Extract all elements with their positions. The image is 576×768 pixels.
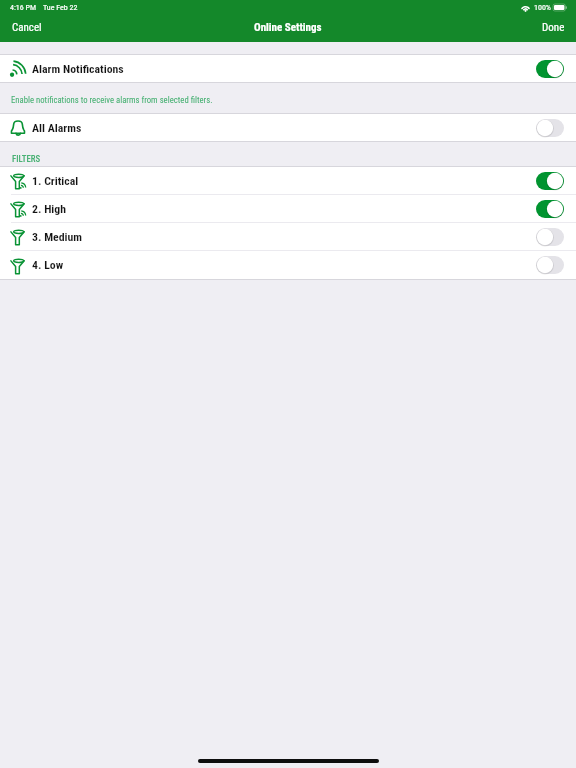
button[interactable]: On [536, 172, 564, 190]
button[interactable]: Off [536, 119, 564, 137]
staticText: Tue Feb 22 [43, 3, 78, 12]
staticText: Done [542, 21, 565, 34]
staticText: 3. Medium [32, 230, 83, 244]
button[interactable]: On [536, 60, 564, 78]
staticText: 2. High [32, 202, 67, 216]
other: Filter [10, 200, 27, 217]
staticText: Alarm Notifications [32, 62, 124, 76]
button[interactable]: Done [530, 0, 576, 41]
button[interactable]: Off [536, 256, 564, 274]
other: All alarms [10, 119, 27, 136]
staticText: 1. Critical [32, 174, 79, 188]
other: Filter [10, 257, 27, 274]
staticText: Online Settings [254, 21, 322, 34]
staticText: All Alarms [32, 121, 82, 135]
staticText: 4:16 PM [10, 3, 37, 12]
staticText: Enable notifications to receive alarms f… [11, 95, 213, 105]
button[interactable]: On [536, 200, 564, 218]
button[interactable]: All alarms [0, 114, 576, 141]
button[interactable]: Filter [0, 167, 576, 194]
button[interactable]: Cancel [0, 0, 54, 41]
button[interactable]: Filter [0, 195, 576, 222]
button[interactable]: Alarm notifications [0, 55, 576, 82]
staticText: Cancel [12, 21, 42, 34]
other: Filter [10, 172, 27, 189]
button[interactable]: Filter [0, 223, 576, 250]
other: Filter [10, 228, 27, 245]
staticText: 4. Low [32, 258, 64, 272]
staticText: 100% [534, 3, 551, 12]
button[interactable]: Off [536, 228, 564, 246]
staticText: FILTERS [12, 154, 41, 164]
other: Alarm notifications [10, 60, 27, 77]
button[interactable]: Filter [0, 251, 576, 279]
